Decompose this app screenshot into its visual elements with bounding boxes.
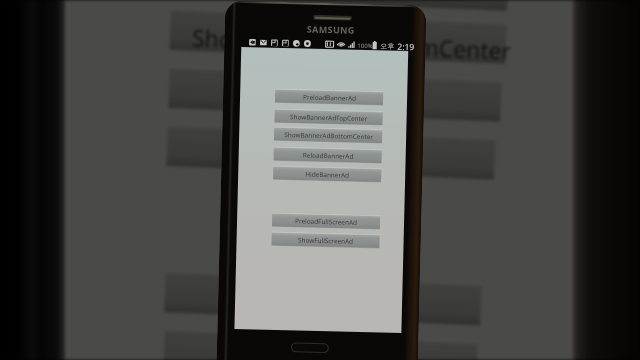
- staticText: 2:19: [397, 41, 414, 53]
- button[interactable]: ShowBannerAdBottomCenter: [274, 127, 382, 143]
- staticText: ReloadBannerAd: [303, 150, 354, 161]
- staticText: 오후: [380, 41, 394, 51]
- staticText: ShowBannerAdBottomCenter: [284, 130, 373, 141]
- staticText: PreloadFullScreenAd: [295, 216, 357, 227]
- staticText: ShowBannerAdBottomCenter: [191, 21, 512, 66]
- button[interactable]: ShowBannerAdTopCenter: [274, 109, 383, 125]
- staticText: HideBannerAd: [305, 170, 349, 180]
- staticText: 100%: [357, 42, 373, 50]
- button[interactable]: HideBannerAd: [273, 166, 381, 182]
- button[interactable]: Home: [291, 342, 329, 353]
- staticText: ShowBannerAdTopCenter: [289, 112, 368, 123]
- staticText: ShowFullScreenAd: [297, 235, 354, 246]
- staticText: PreloadBannerAd: [303, 92, 356, 103]
- button[interactable]: ShowFullScreenAd: [271, 232, 380, 248]
- button[interactable]: PreloadBannerAd: [275, 89, 383, 105]
- staticText: SAMSUNG: [307, 23, 356, 36]
- button[interactable]: PreloadFullScreenAd: [272, 213, 380, 229]
- button[interactable]: ReloadBannerAd: [273, 147, 382, 163]
